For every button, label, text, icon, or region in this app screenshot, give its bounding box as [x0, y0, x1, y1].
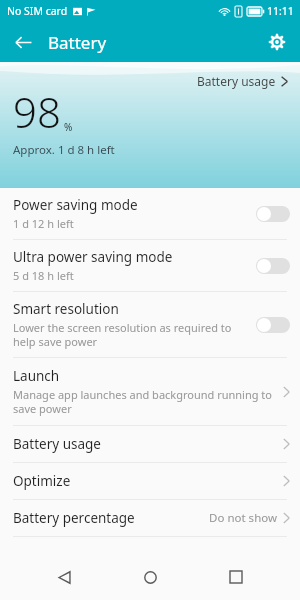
- staticText: 11:11: [267, 4, 294, 18]
- staticText: Ultra power saving mode: [13, 248, 173, 266]
- staticText: Battery: [48, 31, 107, 54]
- button[interactable]: Battery usage: [0, 426, 300, 462]
- staticText: Lower the screen resolution as required …: [13, 320, 246, 349]
- staticText: 1 d 12 h left: [13, 216, 74, 231]
- button[interactable]: Home: [128, 555, 172, 599]
- button[interactable]: Launch: [0, 358, 300, 425]
- staticText: 98: [13, 83, 61, 140]
- button[interactable]: Settings: [260, 25, 294, 59]
- staticText: Do not show: [209, 510, 277, 526]
- staticText: Smart resolution: [13, 300, 119, 318]
- staticText: No SIM card: [7, 4, 68, 18]
- staticText: Approx. 1 d 8 h left: [13, 142, 115, 158]
- staticText: Optimize: [13, 472, 71, 490]
- staticText: Launch: [13, 367, 60, 385]
- staticText: Power saving mode: [13, 196, 138, 214]
- staticText: Battery usage: [13, 435, 101, 453]
- button[interactable]: Battery percentage: [0, 500, 300, 536]
- button[interactable]: Back: [6, 25, 40, 59]
- button[interactable]: Back: [42, 555, 86, 599]
- staticText: Battery percentage: [13, 509, 135, 527]
- button[interactable]: Smart resolution: [0, 292, 300, 357]
- staticText: 5 d 18 h left: [13, 268, 74, 283]
- button[interactable]: Toggle: [256, 258, 290, 274]
- button[interactable]: Toggle: [256, 206, 290, 222]
- button[interactable]: Battery usage: [193, 70, 292, 92]
- button[interactable]: Ultra power saving mode: [0, 240, 300, 291]
- button[interactable]: Recent apps: [214, 555, 258, 599]
- staticText: Manage app launches and background runni…: [13, 387, 277, 416]
- button[interactable]: Optimize: [0, 463, 300, 499]
- staticText: %: [64, 120, 73, 134]
- button[interactable]: Power saving mode: [0, 188, 300, 239]
- button[interactable]: Toggle: [256, 317, 290, 333]
- staticText: Battery usage: [197, 73, 276, 89]
